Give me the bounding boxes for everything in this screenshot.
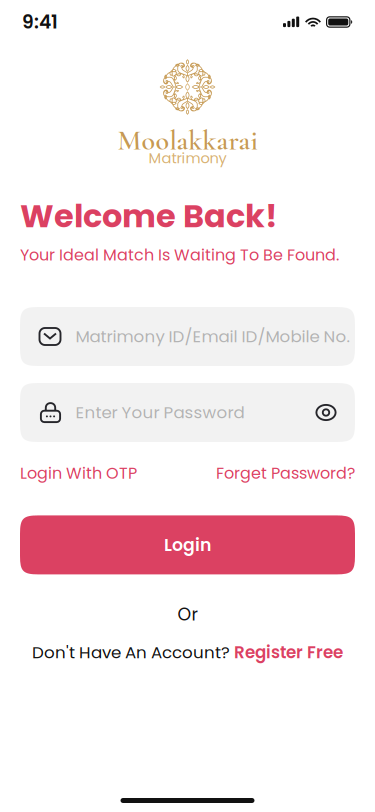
staticText: Matrimony ID/Email ID/Mobile No. [75,325,350,348]
staticText: Register Free [234,641,343,664]
staticText: 9:41 [22,9,58,35]
staticText: Welcome Back! [20,194,278,238]
staticText: Login With OTP [20,462,137,484]
button[interactable]: Show password [297,383,355,442]
staticText: Login [164,533,211,557]
staticText: Your Ideal Match Is Waiting To Be Found. [20,244,339,266]
button[interactable]: Login [20,515,355,574]
staticText: Moolakkarai [117,123,257,157]
button[interactable]: Register Free [234,641,343,664]
staticText: Forget Password? [216,462,355,484]
button[interactable]: Matrimony ID/Email ID/Mobile No. [20,307,355,366]
staticText: Or [177,602,197,627]
button[interactable]: Forget Password? [216,462,355,484]
staticText: Matrimony [148,148,226,168]
button[interactable]: Enter Your Password [20,383,297,442]
staticText: Don't Have An Account? [32,641,234,664]
staticText: Enter Your Password [75,401,244,424]
button[interactable]: Login With OTP [20,462,137,484]
